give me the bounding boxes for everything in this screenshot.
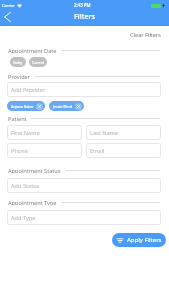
staticText: Filters <box>74 11 96 21</box>
staticText: Add Provider <box>11 86 45 94</box>
staticText: Phone <box>11 147 28 155</box>
button[interactable]: Remove Jessie Ward <box>75 103 82 110</box>
button[interactable]: Remove Anjana Baker <box>36 103 43 110</box>
staticText: Current <box>32 60 44 64</box>
staticText: Apply Filters <box>127 236 162 244</box>
button[interactable]: Anjana Baker <box>7 101 45 111</box>
staticText: Provider <box>8 73 31 79</box>
button[interactable]: First Name <box>7 125 82 140</box>
staticText: Jessie Ward <box>53 104 73 109</box>
button[interactable]: Add Type <box>7 210 161 225</box>
button[interactable]: Apply Filters <box>112 233 166 247</box>
staticText: Email <box>90 147 105 155</box>
staticText: Appointment Date <box>8 47 57 53</box>
button[interactable]: Phone <box>7 143 82 158</box>
button[interactable]: Back <box>0 10 16 26</box>
staticText: Anjana Baker <box>11 104 34 109</box>
button[interactable]: Add Status <box>7 178 161 193</box>
button[interactable]: Last Name <box>86 125 161 140</box>
staticText: Add Type <box>11 214 36 222</box>
button[interactable]: Current <box>29 57 47 67</box>
staticText: Patient <box>8 115 27 121</box>
button[interactable]: Clear Filters <box>127 29 164 41</box>
button[interactable]: Jessie Ward <box>49 101 84 111</box>
staticText: Clear Filters <box>130 31 161 39</box>
button[interactable]: Today <box>10 57 26 67</box>
button[interactable]: Add Provider <box>7 82 161 97</box>
staticText: Appointment Type <box>8 199 57 205</box>
button[interactable]: Email <box>86 143 161 158</box>
staticText: Last Name <box>90 129 118 137</box>
staticText: First Name <box>11 129 40 137</box>
staticText: Carrier <box>2 3 16 8</box>
staticText: Add Status <box>11 182 40 190</box>
staticText: Appointment Status <box>8 167 61 173</box>
staticText: Today <box>13 60 23 64</box>
staticText: 2:43 PM <box>74 2 91 8</box>
